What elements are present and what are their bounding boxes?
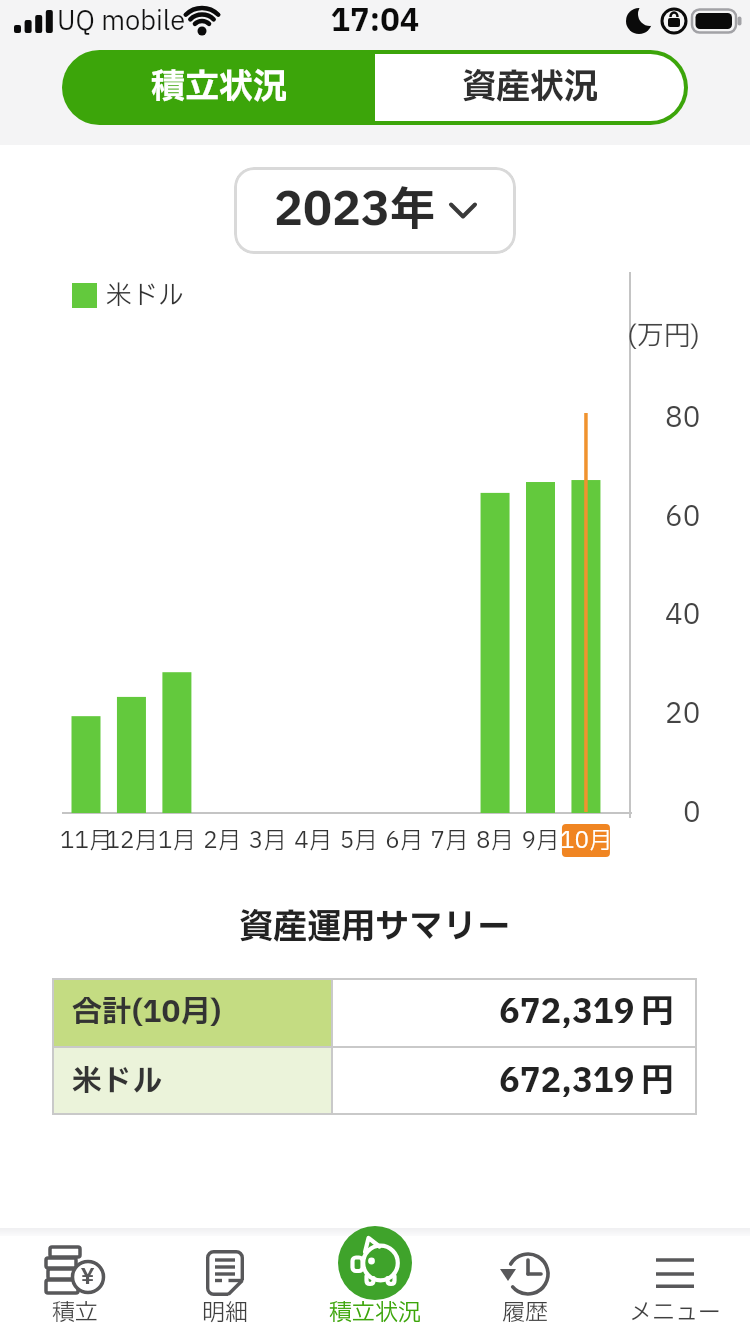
staticText: 明細 [202, 1296, 248, 1330]
staticText: 積立状況 [329, 1296, 421, 1330]
staticText: 米ドル [72, 1059, 162, 1104]
staticText: 672,319 円 [499, 1057, 675, 1106]
button[interactable]: 明細 [150, 1228, 300, 1334]
staticText: メニュー [629, 1296, 721, 1330]
button[interactable]: 米ドル [52, 1047, 697, 1115]
staticText: 資産状況 [462, 62, 598, 113]
button[interactable]: 積立状況 [300, 1228, 450, 1334]
staticText: 合計(10月) [72, 990, 222, 1035]
staticText: 672,319 円 [499, 988, 675, 1037]
button[interactable]: 2023年 [234, 167, 516, 254]
button[interactable]: 資産状況 [375, 54, 684, 121]
staticText: 積立 [52, 1296, 98, 1330]
button[interactable]: 合計(10月) [52, 978, 697, 1047]
staticText: 2023年 [274, 176, 436, 245]
button[interactable]: 履歴 [450, 1228, 600, 1334]
button[interactable]: 積立 [0, 1228, 150, 1334]
button[interactable]: メニュー [600, 1228, 750, 1334]
staticText: 積立状況 [151, 62, 287, 113]
button[interactable]: 積立状況 [62, 50, 375, 125]
staticText: 履歴 [502, 1296, 548, 1330]
